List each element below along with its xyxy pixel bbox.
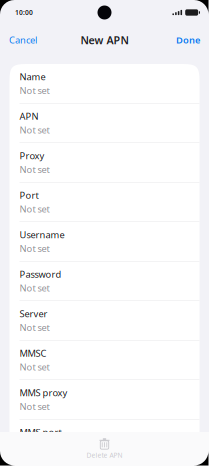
staticText: 10:00 <box>15 8 33 17</box>
button[interactable]: Password <box>9 261 199 300</box>
staticText: Not set <box>19 84 49 97</box>
button[interactable]: APN <box>9 103 199 142</box>
staticText: Cancel <box>9 34 37 46</box>
button[interactable]: Done <box>167 30 209 50</box>
staticText: Password <box>19 268 61 280</box>
staticText: Name <box>19 70 45 83</box>
staticText: Not set <box>19 163 49 176</box>
staticText: New APN <box>80 33 128 47</box>
staticText: MMS proxy <box>19 386 67 399</box>
staticText: Not set <box>19 242 49 255</box>
button[interactable]: MMSC <box>9 340 199 379</box>
staticText: Done <box>176 34 200 46</box>
staticText: Not set <box>19 124 49 136</box>
button[interactable]: Cancel <box>0 30 46 50</box>
staticText: Not set <box>19 400 49 413</box>
button[interactable]: MMS proxy <box>9 380 199 419</box>
staticText: Not set <box>19 361 49 373</box>
staticText: Username <box>19 228 64 241</box>
button[interactable]: Server <box>9 301 199 340</box>
button[interactable]: Delete APN <box>74 435 134 462</box>
staticText: MMSC <box>19 347 46 359</box>
button[interactable]: MMS port <box>9 419 199 458</box>
button[interactable]: MMS protocol <box>9 459 199 466</box>
button[interactable]: Proxy <box>9 143 199 182</box>
staticText: MMS port <box>19 426 61 438</box>
button[interactable]: Name <box>9 64 199 103</box>
staticText: Not set <box>19 203 49 215</box>
button[interactable]: Port <box>9 182 199 221</box>
staticText: Port <box>19 189 38 201</box>
button[interactable]: Username <box>9 222 199 261</box>
staticText: Server <box>19 307 47 320</box>
staticText: Delete APN <box>86 451 122 460</box>
staticText: Not set <box>19 321 49 334</box>
staticText: Proxy <box>19 149 44 162</box>
staticText: APN <box>19 110 38 122</box>
staticText: Not set <box>19 282 49 294</box>
